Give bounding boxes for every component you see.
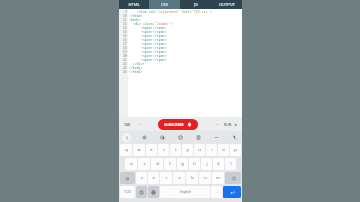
staticText: </span> bbox=[153, 26, 167, 30]
button[interactable]: a bbox=[125, 158, 137, 170]
button[interactable]: n bbox=[199, 172, 211, 184]
staticText: 15 bbox=[123, 34, 127, 38]
staticText: 14 bbox=[123, 30, 127, 34]
staticText: </span> bbox=[153, 34, 167, 38]
button[interactable]: z bbox=[136, 172, 147, 184]
button[interactable]: t bbox=[170, 144, 181, 156]
staticText: </span> bbox=[153, 54, 167, 58]
staticText: 22 bbox=[123, 62, 127, 66]
button[interactable]: JS bbox=[180, 0, 211, 9]
staticText: v bbox=[178, 175, 181, 181]
staticText: <span> bbox=[141, 50, 153, 54]
button[interactable]: l bbox=[225, 158, 236, 170]
button[interactable]: Emoji bbox=[136, 186, 147, 198]
staticText: <span> bbox=[141, 46, 153, 50]
button[interactable]: o bbox=[218, 144, 229, 156]
staticText: 12 bbox=[123, 22, 127, 26]
button[interactable]: e bbox=[146, 144, 157, 156]
button[interactable]: HTML bbox=[119, 0, 149, 9]
button[interactable]: Calculator bbox=[194, 133, 203, 142]
staticText: TAB bbox=[124, 122, 131, 127]
staticText: </div> bbox=[133, 62, 145, 66]
staticText: l bbox=[230, 161, 232, 167]
staticText: > bbox=[171, 22, 173, 26]
staticText: m bbox=[216, 175, 220, 181]
button[interactable]: f bbox=[164, 158, 176, 170]
staticText: b bbox=[191, 175, 194, 181]
staticText: </span> bbox=[153, 30, 167, 34]
staticText: x bbox=[152, 175, 155, 181]
staticText: "loader" bbox=[155, 22, 171, 26]
button[interactable]: OUTPUT bbox=[211, 0, 242, 9]
button[interactable]: Clipboard bbox=[158, 133, 167, 142]
button[interactable]: r bbox=[158, 144, 169, 156]
staticText: <span> bbox=[141, 54, 153, 58]
staticText: q bbox=[125, 147, 128, 153]
button[interactable]: d bbox=[151, 158, 163, 170]
button[interactable]: k bbox=[213, 158, 224, 170]
button[interactable]: Backspace bbox=[225, 172, 241, 184]
staticText: 16 bbox=[123, 38, 127, 42]
button[interactable]: Enter bbox=[223, 186, 241, 198]
button[interactable]: s bbox=[138, 158, 150, 170]
staticText: </span> bbox=[153, 38, 167, 42]
button[interactable]: i bbox=[206, 144, 217, 156]
staticText: <div bbox=[133, 22, 143, 26]
button[interactable]: RUN bbox=[223, 120, 239, 129]
staticText: English bbox=[180, 190, 191, 194]
button[interactable]: More bbox=[212, 133, 221, 142]
button[interactable]: Shift bbox=[120, 172, 135, 184]
button[interactable]: CSS bbox=[149, 0, 180, 9]
staticText: 20 bbox=[123, 54, 127, 58]
staticText: ?123 bbox=[124, 190, 131, 194]
button[interactable]: ?123 bbox=[120, 186, 135, 198]
staticText: rel= bbox=[149, 10, 157, 14]
staticText: </body> bbox=[129, 66, 143, 70]
button[interactable]: Settings bbox=[140, 133, 149, 142]
button[interactable]: m bbox=[212, 172, 224, 184]
button[interactable]: More bbox=[138, 123, 141, 126]
staticText: <link bbox=[137, 10, 149, 14]
button[interactable]: Voice input off bbox=[230, 133, 239, 142]
staticText: h bbox=[193, 161, 196, 167]
staticText: </span> bbox=[153, 42, 167, 46]
staticText: j bbox=[206, 161, 208, 167]
staticText: <span> bbox=[141, 38, 153, 42]
button[interactable]: u bbox=[194, 144, 205, 156]
staticText: 24 bbox=[123, 70, 127, 74]
staticText: 9 bbox=[125, 10, 127, 14]
button[interactable]: j bbox=[201, 158, 212, 170]
button[interactable]: q bbox=[120, 144, 132, 156]
button[interactable]: TAB bbox=[122, 120, 133, 129]
button[interactable]: English bbox=[160, 186, 210, 198]
staticText: f bbox=[169, 161, 171, 167]
button[interactable]: p bbox=[230, 144, 241, 156]
staticText: o bbox=[222, 147, 225, 153]
button[interactable]: y bbox=[182, 144, 193, 156]
button[interactable]: More options bbox=[216, 123, 219, 126]
staticText: <body> bbox=[129, 18, 141, 22]
staticText: i bbox=[211, 147, 213, 153]
button[interactable]: v bbox=[173, 172, 185, 184]
button[interactable]: h bbox=[189, 158, 200, 170]
button[interactable]: SUBSCRIBE bbox=[158, 119, 198, 130]
button[interactable]: w bbox=[133, 144, 145, 156]
button[interactable]: b bbox=[186, 172, 198, 184]
staticText: u bbox=[198, 147, 201, 153]
staticText: 13 bbox=[123, 26, 127, 30]
button[interactable]: g bbox=[177, 158, 188, 170]
button[interactable]: Back bbox=[122, 133, 131, 142]
button[interactable]: c bbox=[160, 172, 172, 184]
button[interactable]: Change language bbox=[148, 186, 159, 198]
button[interactable]: Stickers bbox=[176, 133, 185, 142]
button[interactable]: x bbox=[148, 172, 159, 184]
staticText: n bbox=[204, 175, 207, 181]
